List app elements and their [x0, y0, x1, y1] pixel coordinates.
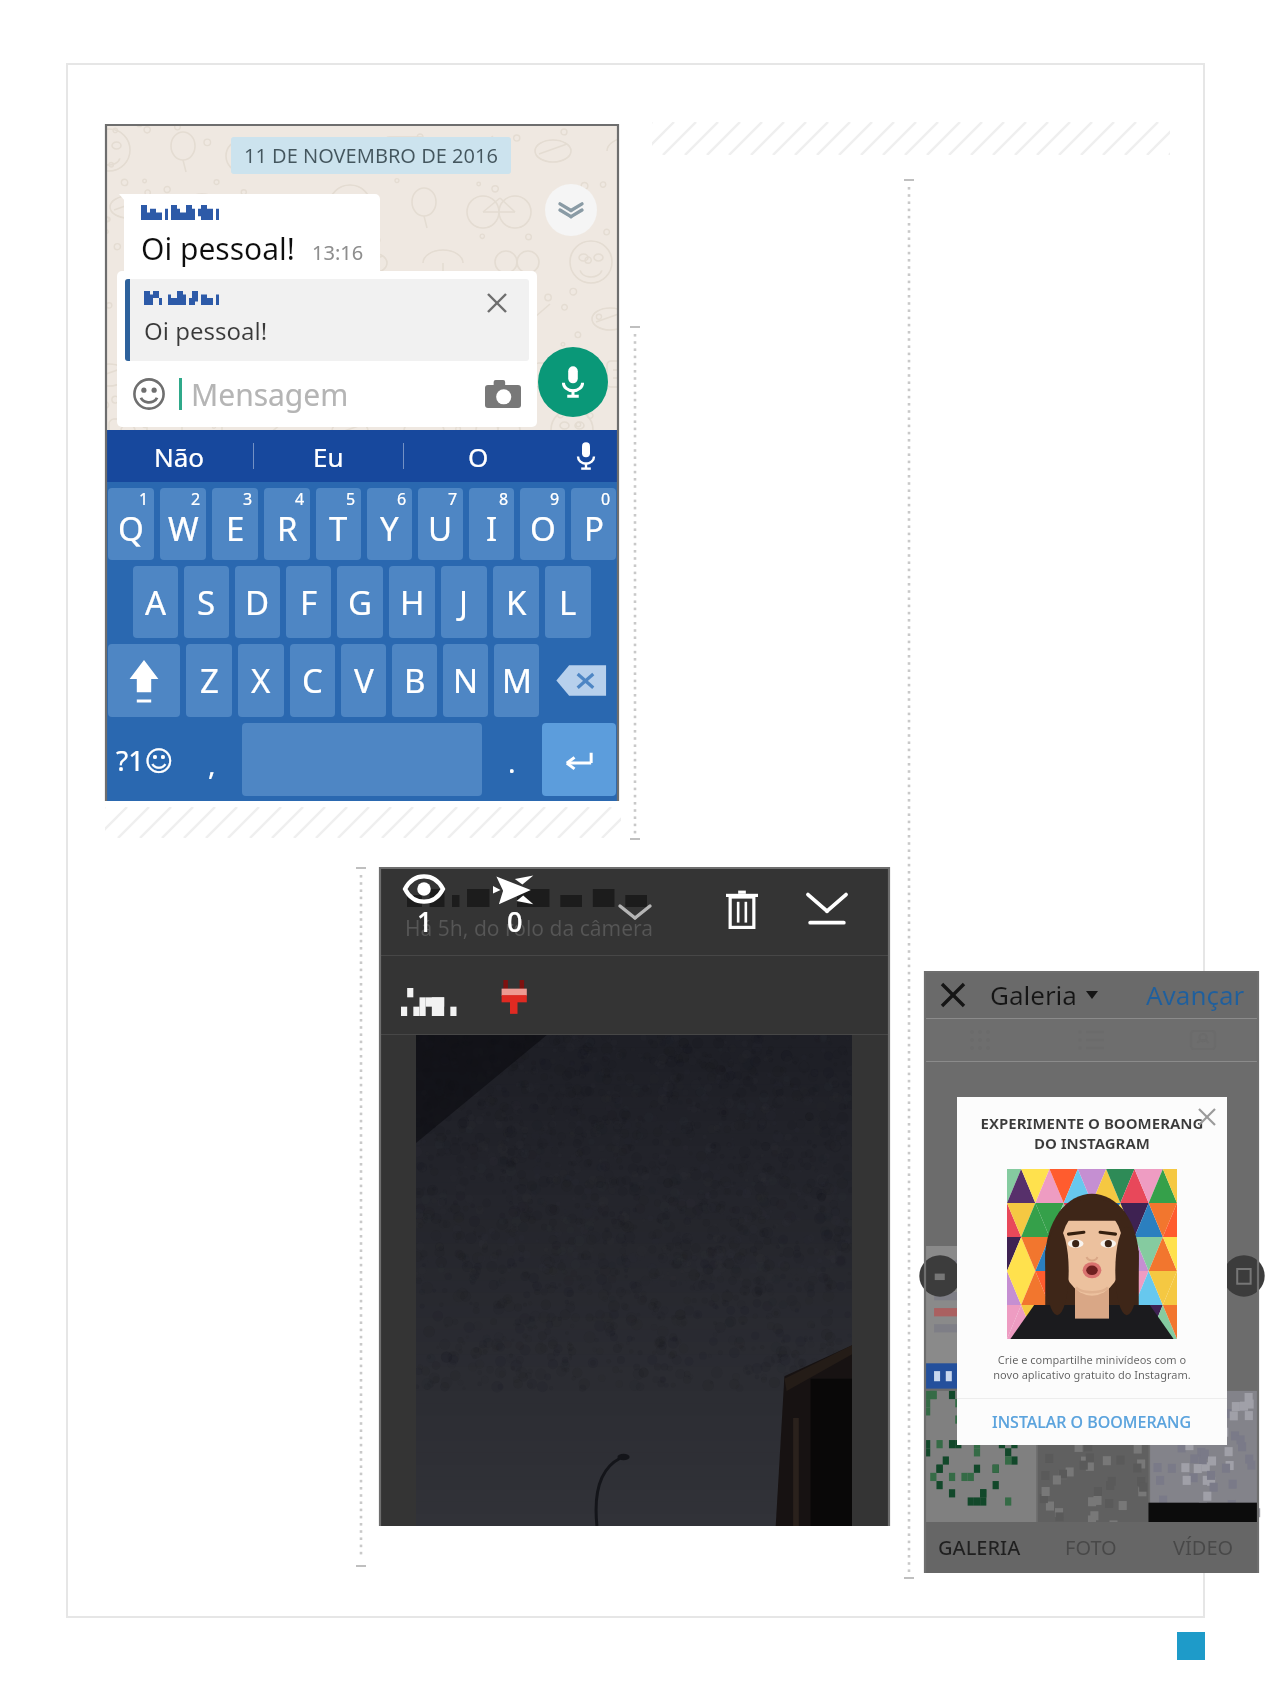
button[interactable]: INSTALAR O BOOMERANG — [957, 1399, 1227, 1445]
button[interactable]: Q — [108, 488, 154, 560]
button[interactable]: E — [212, 488, 258, 560]
staticText: , — [208, 745, 216, 783]
button[interactable]: GALERIA — [924, 1522, 1035, 1573]
button[interactable]: B — [392, 644, 437, 717]
button[interactable]: ?1☺ — [105, 720, 185, 799]
button[interactable]: Enter — [542, 723, 616, 796]
button[interactable]: Oi pessoal! — [125, 279, 529, 361]
staticText: H — [400, 580, 425, 625]
button[interactable]: , — [185, 720, 239, 799]
button[interactable]: A — [133, 566, 178, 638]
staticText: Não — [154, 439, 205, 474]
staticText: 1 — [139, 488, 149, 510]
staticText: U — [428, 506, 453, 551]
staticText: . — [508, 743, 516, 781]
button[interactable]: Backspace — [545, 644, 616, 717]
staticText: O — [530, 506, 556, 551]
staticText: 8 — [499, 488, 509, 510]
staticText: 9 — [550, 488, 560, 510]
staticText: Z — [200, 658, 219, 703]
button[interactable]: Download — [799, 881, 855, 937]
staticText: 13:16 — [312, 239, 364, 266]
staticText: O — [468, 439, 489, 474]
button[interactable]: Z — [186, 644, 232, 717]
staticText: V — [354, 658, 374, 703]
button[interactable]: L — [545, 566, 591, 638]
button[interactable]: Y — [367, 488, 412, 560]
button[interactable]: Não — [105, 430, 253, 482]
staticText: Y — [380, 506, 399, 551]
staticText: 2 — [191, 488, 201, 510]
staticText: ?1☺ — [116, 741, 174, 779]
staticText: 11 DE NOVEMBRO DE 2016 — [244, 142, 498, 169]
button[interactable]: X — [238, 644, 284, 717]
button[interactable]: FOTO — [1035, 1522, 1147, 1573]
staticText: 5 — [346, 488, 356, 510]
staticText: F — [300, 580, 318, 625]
button[interactable]: Dismiss — [1197, 1107, 1217, 1127]
button[interactable]: 11 DE NOVEMBRO DE 2016 — [244, 142, 498, 169]
staticText: INSTALAR O BOOMERANG — [992, 1411, 1192, 1433]
button[interactable]: K — [493, 566, 539, 638]
button[interactable]: J — [441, 566, 487, 638]
button[interactable]: G — [337, 566, 383, 638]
button[interactable]: Cancel reply — [487, 293, 507, 313]
staticText: W — [168, 506, 199, 551]
button[interactable]: Avançar — [1146, 977, 1245, 1012]
staticText: 6 — [397, 488, 407, 510]
button[interactable]: C — [290, 644, 335, 717]
staticText: 0 — [601, 488, 611, 510]
staticText: D — [245, 580, 270, 625]
staticText: G — [348, 580, 373, 625]
button[interactable]: VÍDEO — [1147, 1522, 1259, 1573]
staticText: 0 — [507, 903, 523, 940]
staticText: Galeria — [990, 977, 1077, 1012]
staticText: EXPERIMENTE O BOOMERANG — [957, 1113, 1227, 1133]
button[interactable]: F — [286, 566, 331, 638]
staticText: Há 5h, do rolo da câmera — [405, 914, 654, 943]
button[interactable]: Voice input — [553, 430, 619, 482]
staticText: E — [226, 506, 245, 551]
staticText: DO INSTAGRAM — [957, 1133, 1227, 1153]
button[interactable]: W — [160, 488, 206, 560]
button[interactable]: Scroll to bottom — [545, 184, 597, 236]
button[interactable]: O — [520, 488, 565, 560]
button[interactable]: P — [571, 488, 616, 560]
button[interactable]: Record voice message — [538, 347, 608, 417]
button[interactable]: Expand details — [612, 889, 658, 935]
button[interactable]: O — [404, 430, 553, 482]
button[interactable]: N — [443, 644, 488, 717]
button[interactable]: H — [389, 566, 435, 638]
button[interactable]: Eu — [254, 430, 403, 482]
staticText: C — [302, 658, 323, 703]
button[interactable]: Delete — [714, 881, 770, 937]
button[interactable]: R — [264, 488, 310, 560]
button[interactable]: D — [235, 566, 280, 638]
button[interactable]: Shift — [108, 644, 180, 717]
staticText: Q — [118, 506, 144, 551]
button[interactable]: V — [341, 644, 386, 717]
button[interactable]: Close — [938, 980, 968, 1010]
staticText: 3 — [243, 488, 253, 510]
staticText: R — [277, 506, 298, 551]
button[interactable]: Camera — [485, 380, 521, 408]
button[interactable]: Galeria — [990, 977, 1098, 1012]
staticText: P — [584, 506, 604, 551]
button[interactable]: U — [418, 488, 463, 560]
staticText: A — [145, 580, 167, 625]
button[interactable]: S — [184, 566, 229, 638]
staticText: novo aplicativo gratuito do Instagram. — [957, 1367, 1227, 1382]
button[interactable]: T — [316, 488, 361, 560]
button[interactable]: I — [469, 488, 514, 560]
staticText: VÍDEO — [1173, 1534, 1234, 1561]
staticText: N — [453, 658, 479, 703]
staticText: B — [404, 658, 426, 703]
button[interactable]: M — [494, 644, 539, 717]
staticText: 1 — [417, 903, 433, 940]
button[interactable]: . — [485, 720, 539, 799]
staticText: Eu — [313, 439, 344, 474]
